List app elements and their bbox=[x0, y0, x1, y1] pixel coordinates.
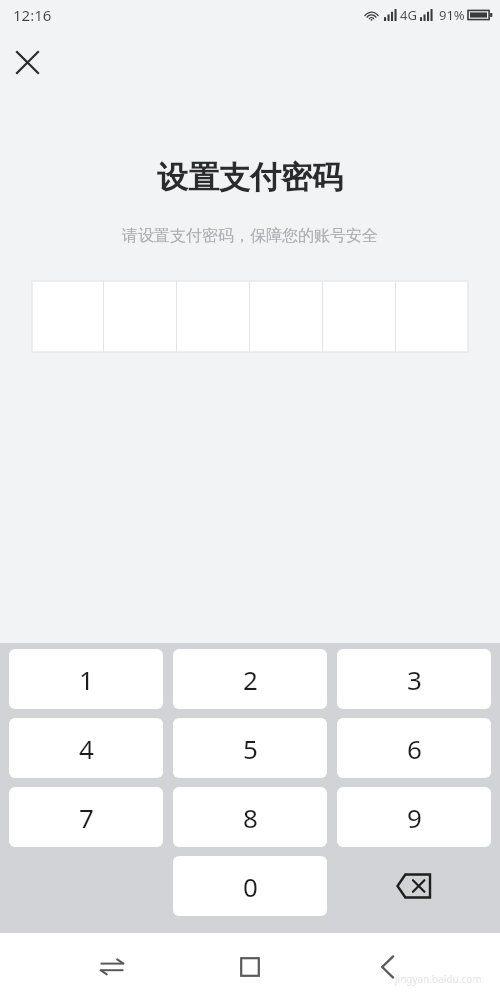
staticText: 2 bbox=[243, 662, 258, 697]
button[interactable]: Back bbox=[363, 942, 413, 992]
button[interactable]: 4 bbox=[9, 718, 163, 778]
button[interactable]: 6 bbox=[337, 718, 491, 778]
button[interactable]: Close bbox=[7, 42, 47, 82]
staticText: 8 bbox=[243, 800, 258, 835]
staticText: 设置支付密码 bbox=[0, 158, 500, 197]
staticText: 9 bbox=[407, 800, 422, 835]
button[interactable] bbox=[396, 281, 468, 352]
staticText: 3 bbox=[407, 662, 422, 697]
staticText: 4 bbox=[79, 731, 94, 766]
staticText: 7 bbox=[79, 800, 94, 835]
button[interactable] bbox=[32, 281, 103, 352]
staticText: 4G bbox=[400, 6, 417, 24]
staticText: 1 bbox=[79, 662, 94, 697]
staticText: 5 bbox=[243, 731, 258, 766]
staticText: 6 bbox=[407, 731, 422, 766]
button[interactable]: 0 bbox=[173, 856, 327, 916]
staticText: 0 bbox=[243, 869, 258, 904]
button[interactable]: Recents bbox=[225, 942, 275, 992]
staticText: jingyan.baidu.com bbox=[395, 972, 482, 986]
button[interactable]: 3 bbox=[337, 649, 491, 709]
button[interactable]: Switch bbox=[87, 942, 137, 992]
button[interactable]: 5 bbox=[173, 718, 327, 778]
button[interactable]: 7 bbox=[9, 787, 163, 847]
button[interactable]: Backspace bbox=[337, 856, 491, 916]
button[interactable]: 1 bbox=[9, 649, 163, 709]
staticText: 12:16 bbox=[13, 5, 52, 25]
button[interactable]: 2 bbox=[173, 649, 327, 709]
button[interactable]: 8 bbox=[173, 787, 327, 847]
button[interactable]: 9 bbox=[337, 787, 491, 847]
staticText: 91% bbox=[439, 6, 465, 24]
staticText: 请设置支付密码，保障您的账号安全 bbox=[0, 226, 500, 246]
